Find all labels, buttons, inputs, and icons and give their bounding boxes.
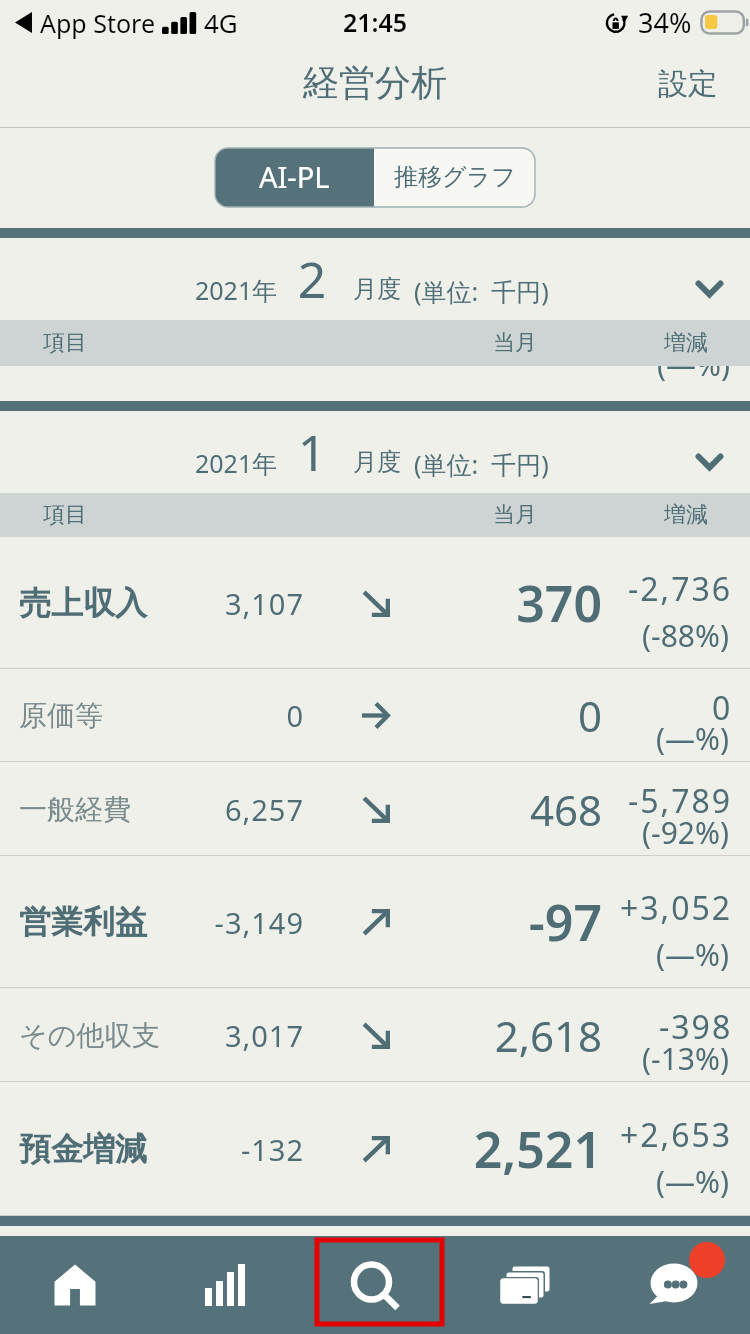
staticText: その他収支 (19, 1018, 161, 1053)
staticText: 0 (402, 687, 602, 744)
staticText: (—%) (656, 718, 729, 759)
button[interactable]: その他収支 (0, 988, 750, 1082)
staticText: -398 (659, 1005, 733, 1049)
staticText: 月度 (353, 447, 401, 477)
button[interactable]: Messages (600, 1236, 750, 1334)
staticText: 当月 (493, 329, 537, 357)
staticText: (-88%) (642, 615, 729, 656)
staticText: (—%) (657, 344, 730, 385)
staticText: 0 (164, 696, 304, 735)
staticText: -97 (402, 888, 602, 956)
staticText: 預金増減 (19, 1129, 147, 1169)
staticText: 34% (638, 4, 692, 41)
staticText: (-92%) (642, 812, 729, 853)
staticText: +3,052 (620, 886, 733, 930)
staticText: 3,017 (164, 1016, 304, 1055)
staticText: 推移グラフ (394, 162, 516, 192)
button[interactable]: AI-PL (215, 148, 374, 207)
staticText: 2,618 (402, 1007, 602, 1064)
staticText: -132 (164, 1130, 304, 1169)
button[interactable]: Cards (450, 1236, 600, 1334)
staticText: (単位: 千円) (414, 274, 549, 308)
staticText: 経営分析 (303, 60, 447, 105)
staticText: (—%) (656, 934, 729, 975)
staticText: 設定 (658, 65, 718, 103)
other: Collapse section (696, 281, 723, 297)
staticText: (-13%) (642, 1038, 729, 1079)
button[interactable]: 預金増減 (0, 1082, 750, 1216)
button[interactable]: 一般経費 (0, 762, 750, 856)
button[interactable]: 営業利益 (0, 856, 750, 988)
staticText: 当月 (493, 501, 537, 529)
staticText: 370 (402, 569, 602, 637)
button[interactable]: Search (300, 1236, 450, 1334)
staticText: 一般経費 (19, 792, 131, 827)
staticText: 売上収入 (19, 583, 147, 623)
staticText: +2,653 (620, 1113, 733, 1157)
staticText: (—%) (656, 1161, 729, 1202)
staticText: 増減 (664, 501, 708, 529)
staticText: 項目 (43, 329, 87, 357)
staticText: -2,736 (628, 567, 733, 611)
staticText: 468 (402, 781, 602, 838)
staticText: 0 (712, 686, 733, 730)
button[interactable]: Home (0, 1236, 150, 1334)
staticText: 項目 (43, 501, 87, 529)
staticText: -5,789 (628, 779, 733, 823)
button[interactable]: Reports (150, 1236, 300, 1334)
staticText: 3,107 (164, 584, 304, 623)
button[interactable]: 2021年 (0, 238, 750, 320)
staticText: 2,521 (402, 1115, 602, 1183)
staticText: 営業利益 (19, 902, 147, 942)
button[interactable]: 設定 (640, 53, 750, 119)
staticText: 増減 (664, 329, 708, 357)
staticText: 2 (296, 245, 328, 313)
staticText: 6,257 (164, 790, 304, 829)
staticText: 原価等 (19, 698, 103, 733)
staticText: 月度 (353, 274, 401, 304)
staticText: App Store (40, 6, 156, 40)
other: Collapse section (696, 454, 723, 470)
button[interactable]: 売上収入 (0, 537, 750, 669)
staticText: 2021年 (195, 446, 278, 480)
button[interactable]: 2021年 (0, 411, 750, 493)
staticText: (単位: 千円) (414, 447, 549, 481)
staticText: 4G (204, 5, 238, 40)
staticText: AI-PL (259, 157, 330, 196)
button[interactable]: 推移グラフ (374, 148, 535, 207)
staticText: 2021年 (195, 273, 278, 307)
button[interactable]: 原価等 (0, 669, 750, 762)
staticText: 21:45 (343, 5, 408, 39)
staticText: -3,149 (164, 903, 304, 942)
staticText: 1 (296, 418, 328, 486)
